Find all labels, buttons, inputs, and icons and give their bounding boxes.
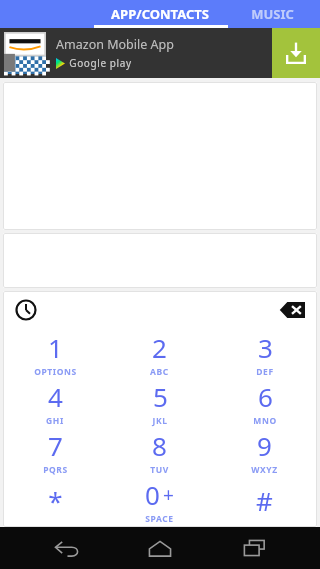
button[interactable]: 7 [3, 427, 107, 476]
staticText: Google play [69, 56, 132, 70]
button[interactable]: Back [40, 527, 94, 569]
button[interactable]: 2 [107, 329, 212, 378]
button[interactable]: Backspace [275, 293, 309, 327]
button[interactable]: MUSIC [224, 0, 320, 28]
staticText: MNO [253, 415, 277, 427]
staticText: GHI [46, 415, 64, 427]
button[interactable]: # [212, 476, 317, 525]
button[interactable]: 6 [212, 378, 317, 427]
button[interactable]: 9 [212, 427, 317, 476]
staticText: 7 [48, 428, 63, 463]
staticText: PQRS [43, 464, 68, 476]
button[interactable]: 3 [212, 329, 317, 378]
staticText: 4 [48, 379, 63, 414]
button[interactable] [0, 0, 95, 28]
staticText: 0 [145, 477, 160, 512]
button[interactable]: 8 [107, 427, 212, 476]
staticText: 6 [258, 379, 273, 414]
staticText: DEF [256, 366, 274, 378]
button[interactable] [3, 82, 317, 230]
staticText: 2 [152, 330, 167, 365]
button[interactable]: Recents [227, 527, 281, 569]
button[interactable]: Download [272, 28, 320, 78]
staticText: WXYZ [251, 464, 278, 476]
staticText: 1 [48, 330, 63, 365]
button[interactable]: 5 [107, 378, 212, 427]
button[interactable]: 0 [107, 476, 212, 525]
button[interactable]: * [3, 476, 107, 525]
staticText: Amazon Mobile App [56, 36, 174, 53]
staticText: TUV [150, 464, 169, 476]
button[interactable]: 4 [3, 378, 107, 427]
button[interactable]: Call history [11, 295, 41, 325]
staticText: OPTIONS [34, 366, 77, 378]
staticText: APP/CONTACTS [111, 5, 209, 23]
staticText: 3 [258, 330, 273, 365]
staticText: SPACE [145, 513, 174, 525]
button[interactable]: Home [133, 527, 187, 569]
staticText: MUSIC [251, 5, 294, 23]
button[interactable]: 1 [3, 329, 107, 378]
staticText: # [256, 483, 273, 518]
staticText: 5 [153, 379, 168, 414]
button[interactable] [3, 233, 317, 288]
button[interactable]: APP/CONTACTS [95, 0, 224, 28]
staticText: ABC [150, 366, 169, 378]
staticText: 9 [257, 428, 272, 463]
staticText: 8 [152, 428, 167, 463]
staticText: JKL [152, 415, 168, 427]
button[interactable]: Amazon Mobile App [0, 28, 320, 78]
staticText: * [48, 483, 63, 518]
staticText: + [163, 482, 174, 508]
